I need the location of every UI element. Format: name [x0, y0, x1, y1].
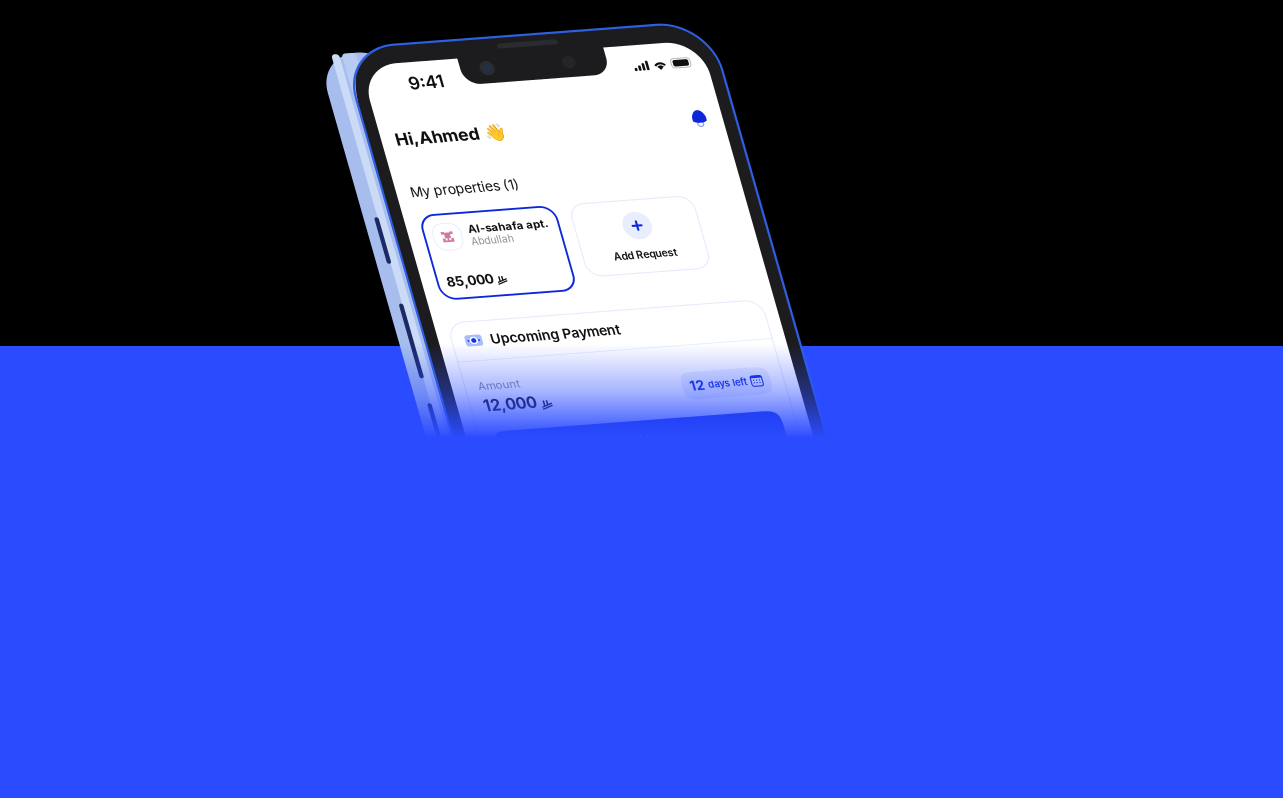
- button[interactable]: Notifications: [370, 102, 391, 123]
